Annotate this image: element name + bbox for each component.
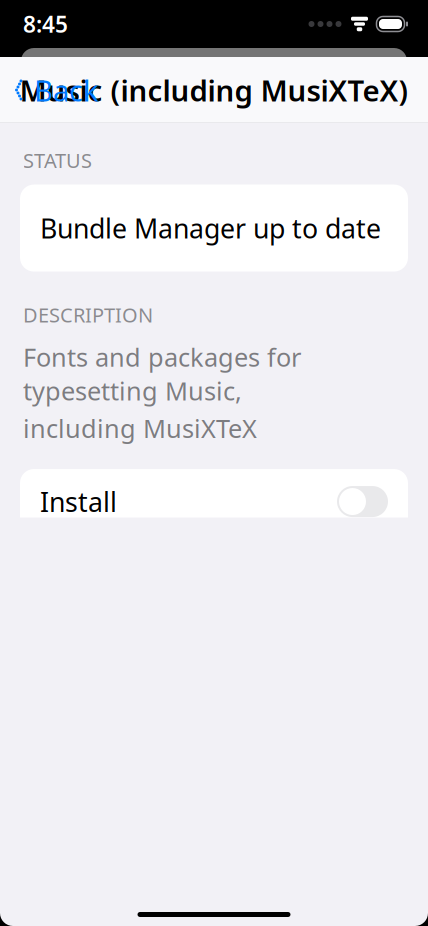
staticText: 8:45 <box>23 9 68 39</box>
staticText: Bundle Manager up to date <box>40 210 381 246</box>
staticText: Music (including MusiXTeX) <box>19 70 408 109</box>
staticText: Required' indicates the disc space neede… <box>23 877 403 926</box>
button[interactable]: Install <box>20 469 408 534</box>
staticText: STATUS <box>23 147 92 174</box>
staticText: including MusiXTeX <box>23 411 257 445</box>
staticText: Install <box>40 484 117 519</box>
staticText: Fonts and packages for typesetting Music… <box>23 340 301 407</box>
staticText: Back <box>34 70 99 109</box>
staticText: DESCRIPTION <box>23 302 153 328</box>
button[interactable]: Back <box>0 64 113 116</box>
